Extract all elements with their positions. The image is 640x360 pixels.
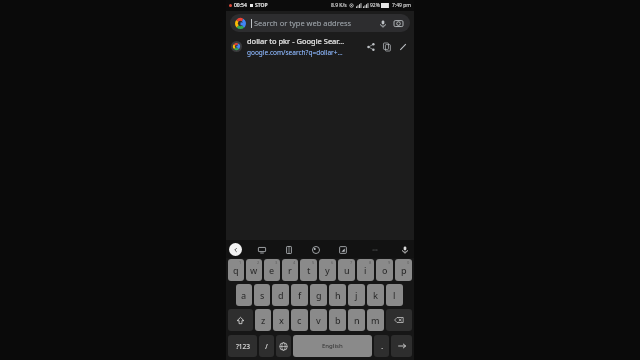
button[interactable]: r bbox=[282, 259, 298, 281]
staticText: 7 bbox=[350, 260, 353, 265]
button[interactable]: ?123 bbox=[228, 335, 257, 357]
button[interactable]: t bbox=[300, 259, 317, 281]
button[interactable]: Shift bbox=[228, 309, 253, 331]
button[interactable]: f bbox=[291, 284, 308, 306]
staticText: r bbox=[288, 264, 292, 276]
staticText: k bbox=[373, 289, 379, 301]
button[interactable]: Search or type web address bbox=[230, 14, 410, 32]
button[interactable]: More options bbox=[368, 243, 381, 256]
staticText: n bbox=[354, 314, 360, 326]
button[interactable]: v bbox=[310, 309, 327, 331]
staticText: t bbox=[307, 264, 311, 276]
staticText: 8.9 K/s bbox=[331, 2, 347, 9]
button[interactable]: Share bbox=[363, 39, 379, 55]
staticText: e bbox=[269, 264, 275, 276]
button[interactable]: Open in new tab bbox=[379, 39, 395, 55]
staticText: s bbox=[260, 289, 265, 301]
button[interactable]: Voice input bbox=[398, 243, 411, 256]
button[interactable]: l bbox=[386, 284, 403, 306]
staticText: x bbox=[279, 314, 284, 326]
button[interactable]: e bbox=[264, 259, 280, 281]
staticText: 92% bbox=[370, 2, 380, 9]
staticText: 3 bbox=[275, 260, 278, 265]
staticText: u bbox=[344, 264, 350, 276]
button[interactable]: c bbox=[291, 309, 308, 331]
button[interactable]: Edit query bbox=[395, 39, 411, 55]
staticText: English bbox=[322, 342, 343, 350]
button[interactable]: / bbox=[259, 335, 274, 357]
button[interactable]: x bbox=[273, 309, 289, 331]
staticText: 8 bbox=[369, 260, 372, 265]
staticText: y bbox=[325, 264, 330, 276]
button[interactable]: Back bbox=[229, 243, 242, 256]
button[interactable]: g bbox=[310, 284, 327, 306]
staticText: o bbox=[382, 264, 388, 276]
button[interactable]: d bbox=[272, 284, 289, 306]
button[interactable]: z bbox=[255, 309, 271, 331]
staticText: dollar to pkr - Google Sear… bbox=[247, 36, 345, 46]
staticText: 1 bbox=[239, 260, 242, 265]
staticText: STOP bbox=[255, 2, 268, 9]
button[interactable]: u bbox=[338, 259, 355, 281]
staticText: l bbox=[393, 289, 396, 301]
button[interactable]: b bbox=[329, 309, 346, 331]
button[interactable]: p bbox=[395, 259, 412, 281]
button[interactable]: o bbox=[376, 259, 393, 281]
button[interactable]: Voice search bbox=[376, 17, 389, 30]
staticText: w bbox=[250, 264, 258, 276]
staticText: h bbox=[335, 289, 341, 301]
button[interactable]: Sticker bbox=[336, 243, 349, 256]
staticText: . bbox=[381, 342, 383, 351]
button[interactable]: . bbox=[374, 335, 389, 357]
staticText: q bbox=[233, 264, 239, 276]
button[interactable]: m bbox=[367, 309, 384, 331]
staticText: 4 bbox=[293, 260, 296, 265]
staticText: i bbox=[364, 264, 367, 276]
button[interactable]: j bbox=[348, 284, 365, 306]
button[interactable]: s bbox=[254, 284, 270, 306]
staticText: b bbox=[335, 314, 341, 326]
staticText: j bbox=[355, 289, 358, 301]
staticText: / bbox=[265, 342, 268, 351]
staticText: d bbox=[278, 289, 284, 301]
button[interactable]: Enter bbox=[391, 335, 412, 357]
button[interactable]: Translate bbox=[282, 243, 295, 256]
staticText: 7:49 pm bbox=[392, 2, 411, 9]
staticText: c bbox=[297, 314, 302, 326]
staticText: m bbox=[371, 314, 380, 326]
button[interactable]: Clipboard bbox=[255, 243, 268, 256]
button[interactable]: Theme bbox=[309, 243, 322, 256]
staticText: 0 bbox=[407, 260, 410, 265]
staticText: g bbox=[316, 289, 322, 301]
staticText: 2 bbox=[257, 260, 260, 265]
button[interactable]: i bbox=[357, 259, 374, 281]
staticText: Search or type web address bbox=[254, 18, 376, 28]
button[interactable]: q bbox=[228, 259, 244, 281]
staticText: 00:54 bbox=[234, 2, 247, 9]
staticText: 5 bbox=[312, 260, 315, 265]
button[interactable]: dollar to pkr - Google Sear… bbox=[226, 34, 414, 59]
staticText: v bbox=[316, 314, 321, 326]
staticText: google.com/search?q=dollar+… bbox=[247, 48, 343, 57]
staticText: 6 bbox=[331, 260, 334, 265]
button[interactable]: k bbox=[367, 284, 384, 306]
button[interactable]: Language bbox=[276, 335, 291, 357]
button[interactable]: y bbox=[319, 259, 336, 281]
staticText: ?123 bbox=[236, 342, 250, 351]
staticText: z bbox=[261, 314, 266, 326]
button[interactable]: a bbox=[236, 284, 252, 306]
staticText: f bbox=[298, 289, 302, 301]
staticText: a bbox=[241, 289, 247, 301]
staticText: 9 bbox=[388, 260, 391, 265]
button[interactable]: h bbox=[329, 284, 346, 306]
button[interactable]: Search with camera bbox=[392, 17, 405, 30]
button[interactable]: w bbox=[246, 259, 262, 281]
button[interactable]: Backspace bbox=[386, 309, 412, 331]
button[interactable]: n bbox=[348, 309, 365, 331]
staticText: p bbox=[401, 264, 407, 276]
button[interactable]: English bbox=[293, 335, 372, 357]
